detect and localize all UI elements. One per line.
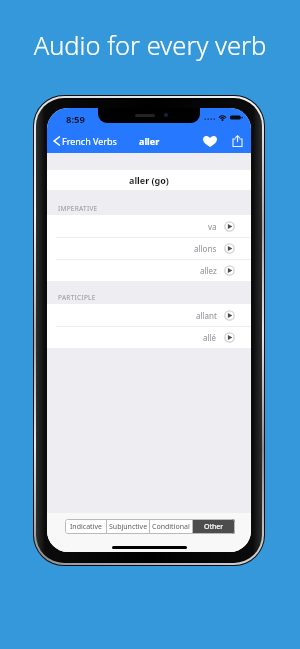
staticText: Subjunctive xyxy=(109,522,148,532)
button[interactable]: Other xyxy=(193,519,235,534)
button[interactable]: Subjunctive xyxy=(107,519,149,534)
staticText: IMPERATIVE xyxy=(58,204,98,213)
staticText: Conditional xyxy=(152,522,190,532)
button[interactable]: allant xyxy=(47,304,251,326)
button[interactable]: allez xyxy=(47,260,251,281)
button[interactable]: French Verbs xyxy=(47,133,122,149)
staticText: Other xyxy=(204,522,224,532)
button[interactable]: Indicative xyxy=(65,519,106,534)
staticText: Indicative xyxy=(70,522,102,532)
staticText: aller xyxy=(139,135,160,147)
staticText: PARTICIPLE xyxy=(58,293,96,302)
button[interactable]: Favorite xyxy=(199,130,221,152)
button[interactable]: Share xyxy=(226,130,248,152)
button[interactable]: Conditional xyxy=(150,519,192,534)
staticText: allant xyxy=(196,310,217,321)
button[interactable]: va xyxy=(47,215,251,237)
staticText: aller (go) xyxy=(129,174,169,186)
staticText: allez xyxy=(200,265,217,276)
button[interactable]: allons xyxy=(47,238,251,259)
staticText: allé xyxy=(203,332,217,343)
staticText: allons xyxy=(194,243,217,254)
staticText: Audio for every verb xyxy=(0,28,300,63)
button[interactable]: allé xyxy=(47,327,251,348)
staticText: 8:59 xyxy=(66,113,85,126)
staticText: French Verbs xyxy=(62,135,117,147)
staticText: va xyxy=(208,221,217,232)
